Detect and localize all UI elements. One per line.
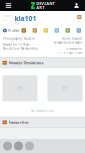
staticText: Deviant for 13 Years [3,43,29,46]
staticText: 0 Deviations [66,47,82,50]
button[interactable]: Shop [65,27,71,34]
button[interactable]: Send a note [77,14,82,20]
staticText: DEVIANT [36,1,54,6]
staticText: No deviations yet [31,109,54,113]
button[interactable]: Posts [43,27,49,34]
button[interactable]: DeviantArt home [31,0,54,11]
staticText: Art [3,18,7,21]
staticText: kla101 [14,14,36,23]
staticText: Female/United States [54,41,82,44]
button[interactable]: More [76,27,82,34]
staticText: Needs Core Membership [3,47,38,50]
button[interactable]: Profile [3,27,19,34]
button[interactable]: Favourites [32,27,38,34]
staticText: Deviant [3,14,12,17]
button[interactable]: Gallery [21,27,27,34]
staticText: ART [36,5,44,10]
staticText: 1,176 Page Views [57,51,82,54]
button[interactable]: Deviation thumbnail [2,75,37,101]
staticText: Photography / Student [3,37,35,40]
button[interactable]: kla101 [14,14,36,23]
staticText: chelle (mixed) [62,37,82,40]
staticText: Favourites [8,120,28,125]
button[interactable]: Menu [2,0,15,11]
staticText: Yuu [14,21,19,25]
button[interactable]: Account [70,0,83,11]
button[interactable]: About [54,27,60,34]
staticText: Newest Deviations [8,60,43,65]
staticText: Profile [8,28,19,33]
